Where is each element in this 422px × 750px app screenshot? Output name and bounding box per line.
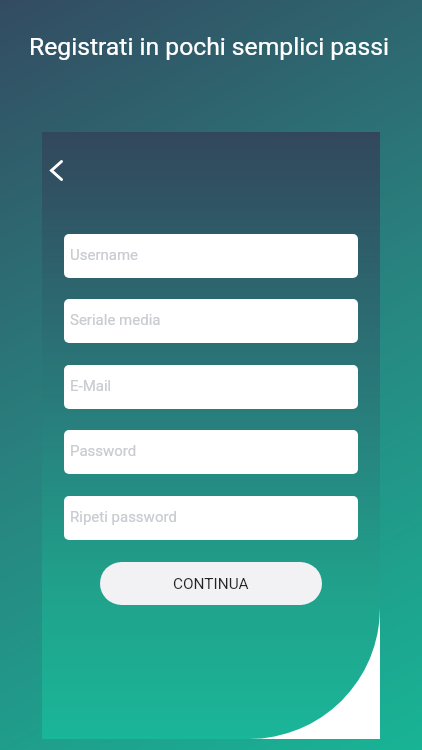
staticText: E-Mail [70,377,112,395]
button[interactable]: Password [64,430,358,474]
staticText: Seriale media [70,311,161,329]
staticText: Password [70,442,137,460]
button[interactable]: Ripeti password [64,496,358,540]
button[interactable]: Back [32,146,80,194]
staticText: Username [70,246,139,264]
staticText: CONTINUA [173,575,249,593]
button[interactable]: CONTINUA [100,562,322,605]
staticText: Ripeti password [70,508,177,526]
staticText: Registrati in pochi semplici passi [29,32,390,61]
button[interactable]: Username [64,234,358,278]
button[interactable]: E-Mail [64,365,358,409]
button[interactable]: Seriale media [64,299,358,343]
